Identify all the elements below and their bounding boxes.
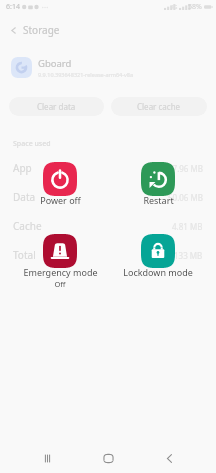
button[interactable]: Emergency mode — [11, 234, 109, 290]
staticText: Emergency mode — [23, 266, 98, 278]
staticText: 4G — [171, 4, 178, 11]
staticText: Off — [54, 279, 66, 289]
staticText: Lockdown mode — [123, 266, 193, 278]
staticText: 133 MB — [174, 250, 203, 261]
button[interactable]: Data — [0, 186, 216, 208]
staticText: 6:14 — [6, 2, 20, 12]
button[interactable]: Clear cache — [111, 97, 207, 116]
staticText: App — [13, 161, 32, 175]
staticText: Clear cache — [137, 101, 181, 112]
button[interactable]: Cache — [0, 215, 216, 237]
staticText: 77.96 MB — [168, 163, 203, 174]
staticText: Clear data — [37, 101, 76, 112]
button[interactable]: Lockdown mode — [109, 234, 207, 280]
staticText: 9.9.10.393648321-release-arm64-v8a — [38, 71, 134, 78]
staticText: Data — [13, 190, 36, 204]
button[interactable]: Restart — [109, 162, 207, 208]
staticText: 58% — [188, 2, 202, 12]
button[interactable]: App — [0, 157, 216, 179]
staticText: Cache — [13, 219, 42, 233]
staticText: 4.81 MB — [172, 221, 203, 232]
button[interactable]: Power off — [11, 162, 109, 208]
staticText: Restart — [143, 194, 174, 206]
button[interactable]: Storage — [9, 20, 216, 40]
staticText: Power off — [40, 194, 81, 206]
button[interactable]: Home — [93, 443, 123, 473]
button[interactable]: Total — [0, 244, 216, 266]
staticText: 50.06 MB — [168, 192, 203, 203]
staticText: Space used — [13, 139, 51, 149]
staticText: Storage — [23, 23, 60, 37]
button[interactable]: Recents — [32, 443, 62, 473]
staticText: Total — [13, 248, 36, 262]
staticText: Gboard — [38, 57, 72, 70]
button[interactable]: Back — [154, 443, 184, 473]
button[interactable]: Clear data — [9, 97, 104, 116]
